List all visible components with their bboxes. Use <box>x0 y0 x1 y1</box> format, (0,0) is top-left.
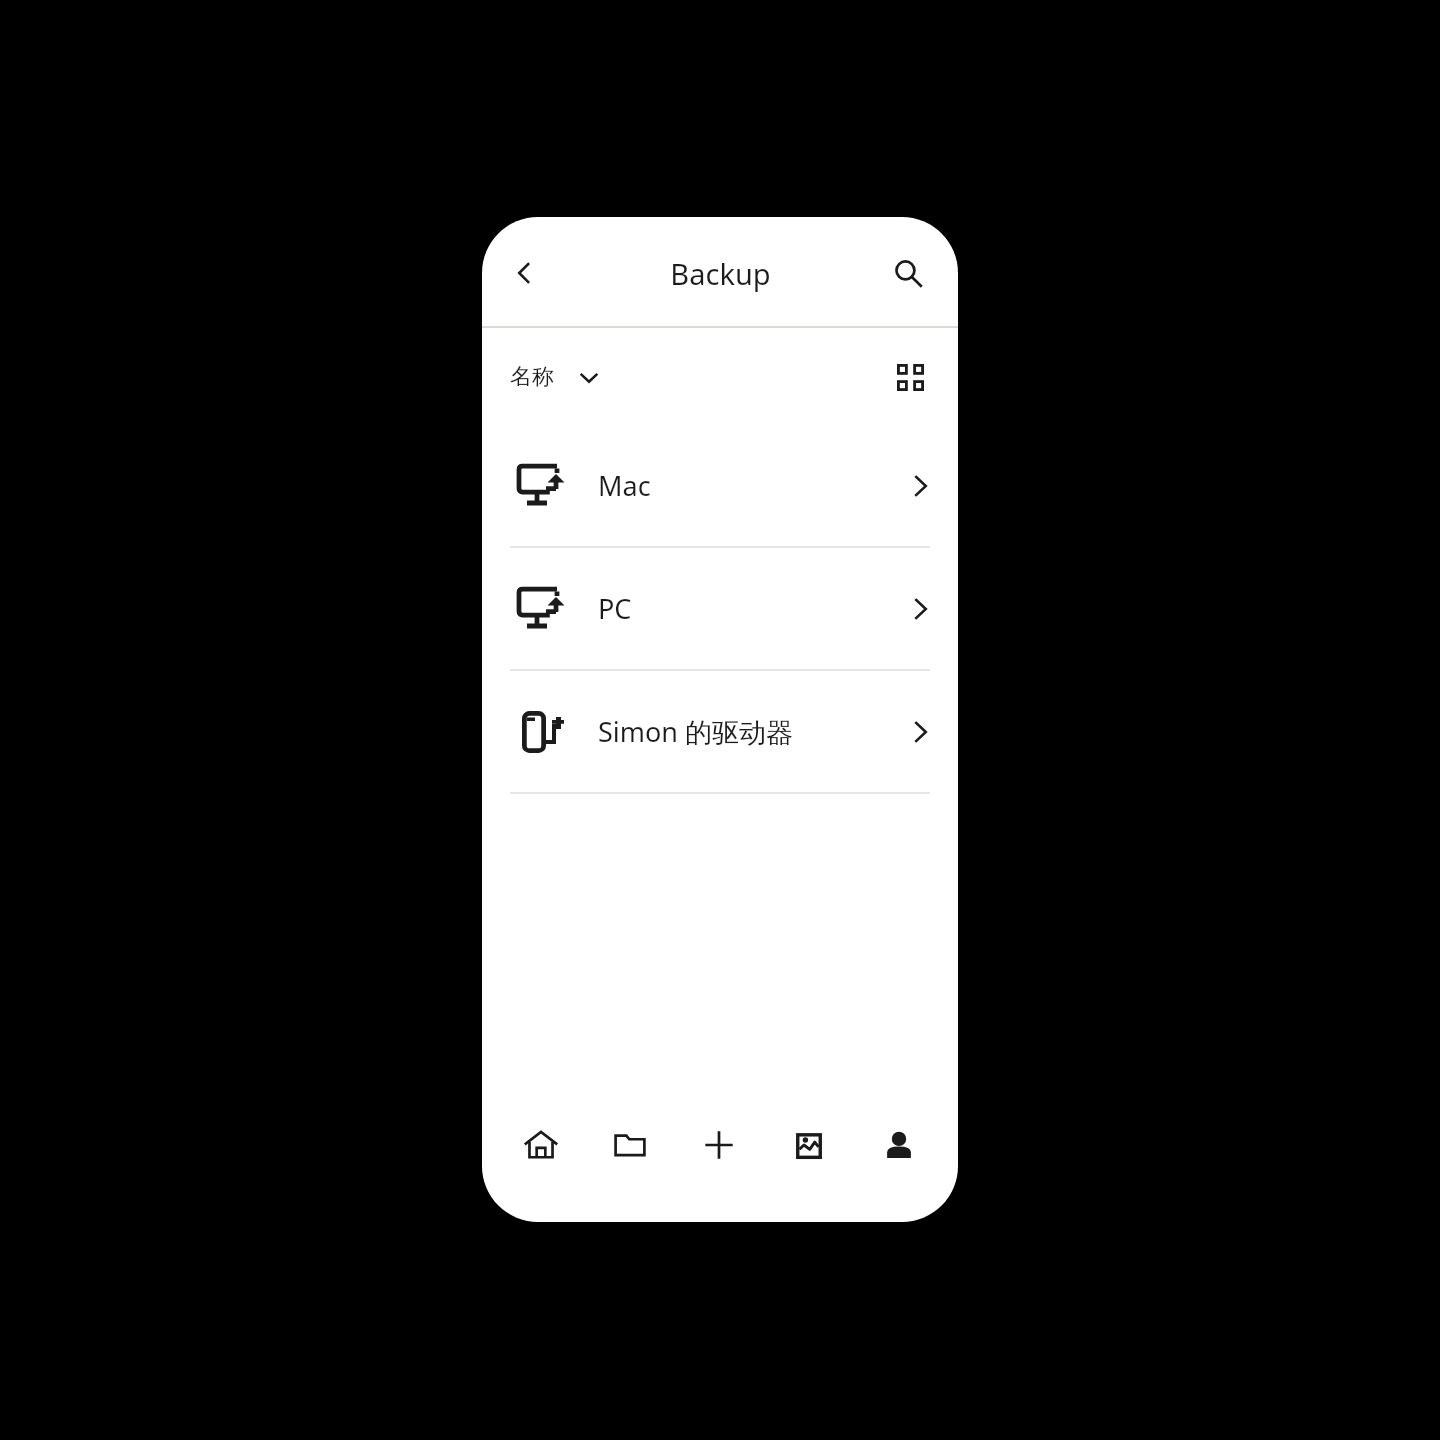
button[interactable]: Add <box>674 1084 764 1222</box>
staticText: PC <box>598 590 906 627</box>
button[interactable]: Mac <box>482 425 958 546</box>
button[interactable]: Grid view <box>884 351 936 403</box>
button[interactable]: Search <box>880 245 936 301</box>
staticText: Mac <box>598 467 906 504</box>
staticText: Backup <box>670 254 771 293</box>
button[interactable]: PC <box>482 548 958 669</box>
button[interactable]: Home <box>496 1084 585 1222</box>
button[interactable]: 名称 <box>504 355 608 399</box>
staticText: 名称 <box>510 363 554 391</box>
button[interactable]: Profile <box>854 1084 944 1222</box>
button[interactable]: Files <box>585 1084 674 1222</box>
button[interactable]: Back <box>496 245 552 301</box>
staticText: Simon 的驱动器 <box>598 713 906 750</box>
button[interactable]: Simon 的驱动器 <box>482 671 958 792</box>
button[interactable]: Photos <box>764 1084 854 1222</box>
